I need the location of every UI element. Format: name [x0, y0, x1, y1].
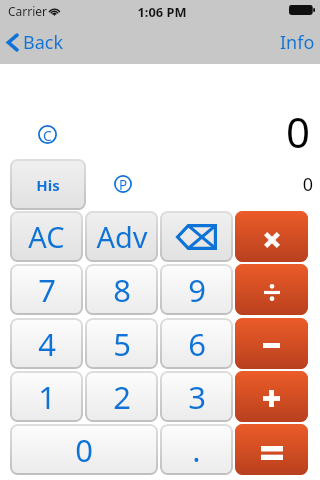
staticText: 0 [0, 172, 313, 197]
staticText: AC [28, 217, 65, 256]
button[interactable]: 3 [160, 371, 233, 422]
staticText: Adv [96, 217, 148, 256]
button[interactable]: Backspace [160, 211, 233, 262]
button[interactable]: Back [6, 28, 64, 56]
button[interactable]: 9 [160, 264, 233, 315]
button[interactable]: Minus [235, 318, 308, 369]
staticText: Back [23, 30, 64, 55]
staticText: 9 [188, 269, 206, 311]
staticText: 4 [38, 323, 56, 365]
button[interactable]: 5 [85, 318, 158, 369]
button[interactable]: 1 [10, 371, 83, 422]
staticText: . [192, 429, 201, 471]
staticText: Info [280, 30, 315, 55]
staticText: 7 [38, 269, 56, 311]
staticText: Carrier [8, 3, 48, 19]
button[interactable]: Plus [235, 371, 308, 422]
staticText: 3 [188, 376, 206, 418]
staticText: C [43, 126, 52, 145]
button[interactable]: . [160, 424, 233, 475]
button[interactable]: His [10, 159, 86, 210]
staticText: 5 [113, 323, 131, 365]
staticText: 1 [38, 376, 56, 418]
staticText: His [36, 175, 60, 195]
button[interactable]: 6 [160, 318, 233, 369]
button[interactable]: 4 [10, 318, 83, 369]
button[interactable]: Info [280, 28, 315, 56]
staticText: 6 [188, 323, 206, 365]
button[interactable]: Divide [235, 264, 308, 315]
staticText: P [119, 176, 128, 194]
button[interactable]: Copy [38, 125, 57, 144]
button[interactable]: 2 [85, 371, 158, 422]
staticText: 1:06 PM [2, 3, 320, 20]
button[interactable]: Equals [235, 424, 308, 475]
button[interactable]: 0 [10, 424, 158, 475]
button[interactable]: Multiply [235, 211, 308, 262]
staticText: 0 [75, 429, 93, 471]
button[interactable]: Paste [114, 175, 132, 193]
button[interactable]: AC [10, 211, 83, 262]
button[interactable]: 7 [10, 264, 83, 315]
button[interactable]: Adv [85, 211, 158, 262]
staticText: 2 [113, 376, 131, 418]
staticText: 0 [0, 103, 310, 160]
button[interactable]: 8 [85, 264, 158, 315]
staticText: 8 [113, 269, 131, 311]
